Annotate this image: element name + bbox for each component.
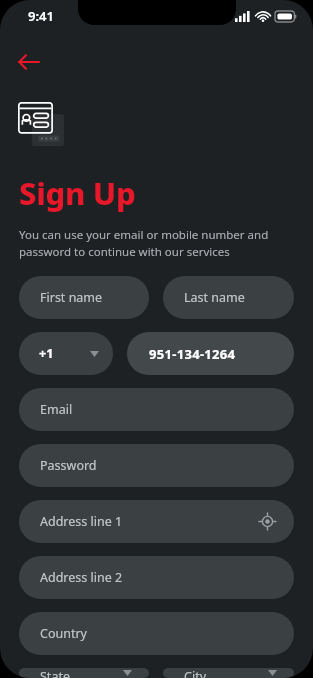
staticText: Address line 1 xyxy=(40,513,123,530)
button[interactable]: Address line 1 xyxy=(19,500,294,543)
button[interactable]: First name xyxy=(19,276,149,319)
button[interactable]: Email xyxy=(19,388,294,431)
staticText: +1 xyxy=(39,345,54,362)
staticText: Sign Up xyxy=(19,172,136,214)
staticText: Email xyxy=(40,401,73,418)
button[interactable]: Country xyxy=(19,612,294,655)
staticText: Address line 2 xyxy=(40,569,123,586)
button[interactable]: 951-134-1264 xyxy=(127,332,294,375)
staticText: 9:41 xyxy=(28,7,54,25)
staticText: First name xyxy=(40,289,103,306)
button[interactable]: City xyxy=(163,668,294,678)
button[interactable]: Use current location xyxy=(259,513,276,530)
staticText: You can use your email or mobile number … xyxy=(19,227,294,259)
button[interactable]: Back xyxy=(8,48,48,76)
button[interactable]: Address line 2 xyxy=(19,556,294,599)
staticText: Country xyxy=(40,625,87,642)
button[interactable]: +1 xyxy=(19,332,113,375)
button[interactable]: State xyxy=(19,668,149,678)
staticText: State xyxy=(40,668,70,678)
button[interactable]: Last name xyxy=(163,276,294,319)
staticText: Password xyxy=(40,457,97,474)
staticText: 951-134-1264 xyxy=(149,345,236,363)
button[interactable]: Password xyxy=(19,444,294,487)
staticText: City xyxy=(184,668,207,678)
staticText: Last name xyxy=(184,289,245,306)
